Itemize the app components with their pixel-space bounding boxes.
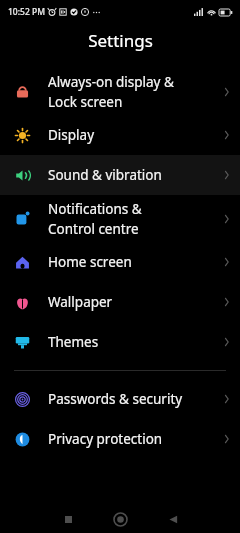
staticText: Wallpaper xyxy=(48,293,113,311)
button[interactable]: Recents xyxy=(58,509,78,529)
button[interactable]: Home screen xyxy=(0,242,240,282)
button[interactable]: Passwords & security xyxy=(0,379,240,419)
staticText: Always-on display & xyxy=(48,73,174,91)
button[interactable]: Home xyxy=(109,508,131,530)
button[interactable]: Wallpaper xyxy=(0,282,240,322)
button[interactable]: Themes xyxy=(0,322,240,362)
staticText: Display xyxy=(48,126,95,144)
button[interactable]: Display xyxy=(0,115,240,155)
staticText: Lock screen xyxy=(48,93,123,111)
staticText: 10:52 PM xyxy=(8,6,45,18)
staticText: Home screen xyxy=(48,253,132,271)
button[interactable]: Always-on display & xyxy=(0,68,240,115)
staticText: Themes xyxy=(48,333,99,351)
staticText: Privacy protection xyxy=(48,430,163,448)
staticText: Passwords & security xyxy=(48,390,183,408)
button[interactable]: Sound & vibration xyxy=(0,155,240,195)
button[interactable]: Notifications & xyxy=(0,195,240,242)
staticText: Control centre xyxy=(48,220,139,238)
staticText: Notifications & xyxy=(48,200,142,218)
staticText: Settings xyxy=(88,29,153,52)
button[interactable]: Back xyxy=(163,509,183,529)
staticText: Sound & vibration xyxy=(48,166,162,184)
button[interactable]: Privacy protection xyxy=(0,419,240,459)
